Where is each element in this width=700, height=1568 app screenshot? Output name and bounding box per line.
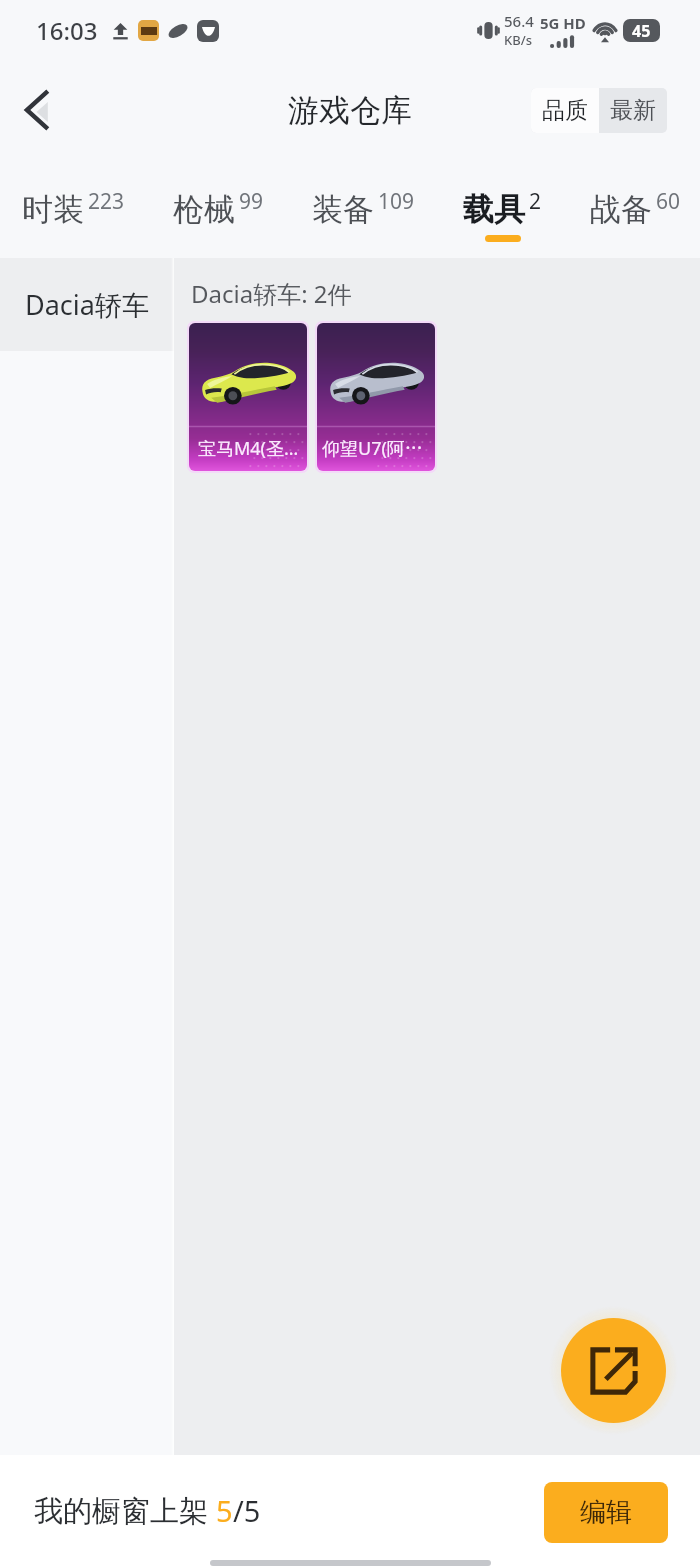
button[interactable]: 仰望U7(阿盖… [317,323,435,471]
button[interactable]: Back [8,81,66,139]
button[interactable]: 枪械 [169,172,268,246]
staticText: 时装 [22,190,84,229]
button[interactable]: 载具 [459,172,546,246]
staticText: 5 [216,1491,233,1530]
button[interactable]: 品质 [531,88,599,133]
staticText: KB/s [504,31,533,49]
staticText: 我的橱窗上架 [34,1490,216,1530]
staticText: 99 [239,187,264,216]
staticText: /5 [233,1491,261,1530]
button[interactable]: 装备 [308,172,419,246]
staticText: 战备 [590,190,652,229]
staticText: 45 [632,20,651,42]
staticText: 5G HD [540,13,586,33]
staticText: 仰望U7(阿盖… [322,436,430,461]
staticText: Dacia轿车: 2件 [191,277,352,310]
staticText: Dacia轿车 [25,286,149,323]
staticText: 223 [88,187,125,216]
button[interactable]: 最新 [599,88,667,133]
button[interactable]: 战备 [586,172,685,246]
button[interactable]: Dacia轿车 [0,258,174,351]
staticText: 2 [529,187,542,216]
staticText: 品质 [542,96,588,125]
staticText: 装备 [312,190,374,229]
staticText: 载具 [463,190,525,229]
staticText: 109 [378,187,415,216]
staticText: 最新 [610,96,656,125]
button[interactable]: Open in new window [561,1318,666,1423]
staticText: 枪械 [173,190,235,229]
staticText: 56.4 [504,11,534,31]
staticText: 宝马M4(圣… [198,436,299,461]
staticText: 游戏仓库 [288,91,412,130]
button[interactable]: 编辑 [544,1482,668,1543]
staticText: 编辑 [580,1496,632,1529]
staticText: 16:03 [36,14,98,47]
button[interactable]: 时装 [18,172,129,246]
staticText: 60 [656,187,681,216]
button[interactable]: 宝马M4(圣… [189,323,307,471]
